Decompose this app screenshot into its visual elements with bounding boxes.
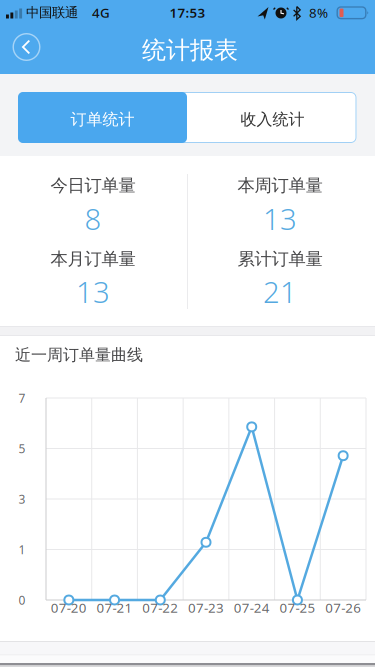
staticText: 17:53 [169, 4, 205, 21]
staticText: 今日订单量 [50, 175, 135, 196]
staticText: 8% [309, 4, 328, 21]
staticText: 5 [18, 440, 25, 456]
staticText: 07-20 [51, 599, 87, 616]
staticText: 4G [92, 4, 110, 21]
staticText: 1 [18, 541, 25, 557]
staticText: 07-21 [97, 599, 133, 616]
staticText: 近一周订单量曲线 [15, 345, 143, 365]
staticText: 本周订单量 [237, 175, 322, 196]
staticText: 统计报表 [142, 36, 238, 65]
staticText: 13 [263, 199, 297, 238]
button[interactable]: 收入统计 [188, 92, 357, 143]
staticText: 3 [18, 491, 25, 507]
staticText: 本月订单量 [50, 248, 135, 270]
staticText: 13 [76, 272, 110, 311]
staticText: 累计订单量 [237, 248, 322, 270]
button[interactable]: Back [12, 33, 40, 61]
staticText: 8 [84, 199, 101, 238]
staticText: 中国联通 [26, 4, 78, 21]
staticText: 07-23 [188, 599, 224, 616]
staticText: 0 [18, 592, 25, 608]
staticText: 21 [263, 272, 297, 311]
staticText: 07-24 [234, 599, 270, 616]
staticText: 收入统计 [240, 110, 304, 129]
staticText: 07-26 [325, 599, 361, 616]
button[interactable]: 订单统计 [18, 92, 187, 143]
staticText: 07-22 [142, 599, 178, 616]
staticText: 订单统计 [70, 110, 134, 129]
staticText: 07-25 [279, 599, 315, 616]
staticText: 7 [18, 390, 25, 406]
